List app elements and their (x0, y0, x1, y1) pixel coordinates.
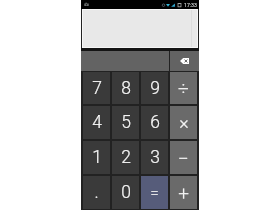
button[interactable]: ÷ (170, 72, 197, 104)
staticText: 1 (92, 147, 102, 168)
staticText: 5 (121, 112, 131, 133)
button[interactable]: Delete (170, 51, 199, 71)
staticText: 2 (121, 147, 131, 168)
button[interactable]: 3 (141, 141, 168, 174)
staticText: 7 (92, 78, 102, 99)
button[interactable]: + (170, 176, 197, 209)
staticText: 17:33 (184, 2, 197, 8)
button[interactable]: . (83, 176, 110, 209)
button[interactable]: 9 (141, 72, 168, 104)
button[interactable]: 1 (83, 141, 110, 174)
staticText: 0 (121, 182, 131, 203)
staticText: 9 (150, 78, 160, 99)
button[interactable]: 0 (112, 176, 139, 209)
button[interactable]: × (170, 106, 197, 139)
button[interactable]: 2 (112, 141, 139, 174)
staticText: ÷ (178, 77, 189, 99)
button[interactable]: = (141, 176, 168, 209)
staticText: = (150, 184, 159, 202)
staticText: − (178, 147, 189, 169)
staticText: 6 (150, 112, 160, 133)
staticText: 8 (121, 78, 131, 99)
button[interactable]: − (170, 141, 197, 174)
button[interactable]: 4 (83, 106, 110, 139)
button[interactable]: 5 (112, 106, 139, 139)
button[interactable]: 6 (141, 106, 168, 139)
staticText: × (179, 112, 189, 133)
staticText: . (94, 182, 99, 203)
staticText: + (178, 182, 189, 204)
staticText: 3 (150, 147, 160, 168)
button[interactable]: 7 (83, 72, 110, 104)
staticText: 4 (92, 112, 102, 133)
button[interactable]: 8 (112, 72, 139, 104)
